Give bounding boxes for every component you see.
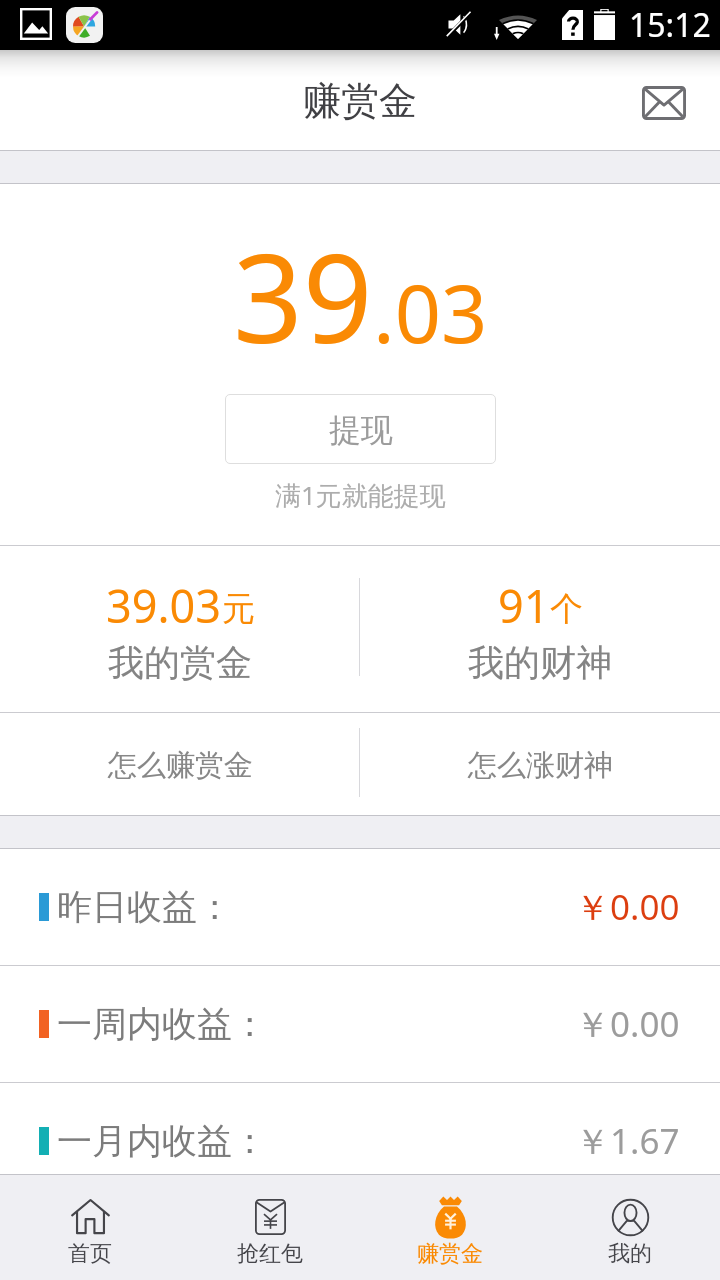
button[interactable]: 怎么涨财神 xyxy=(360,713,720,815)
button[interactable]: Messages xyxy=(628,67,700,139)
staticText: 一月内收益： xyxy=(57,1119,267,1163)
button[interactable]: 赚赏金 xyxy=(360,1175,540,1280)
staticText: 91 xyxy=(498,575,550,636)
button[interactable]: 91 xyxy=(360,546,720,712)
staticText: ￥1.67 xyxy=(575,1117,680,1165)
staticText: 我的财神 xyxy=(468,640,612,685)
button[interactable]: 提现 xyxy=(225,394,496,464)
button[interactable]: 昨日收益： xyxy=(0,849,720,965)
staticText: 怎么赚赏金 xyxy=(108,747,253,784)
button[interactable]: 39.03 xyxy=(0,546,360,712)
staticText: ￥0.00 xyxy=(575,883,680,931)
staticText: 39.03 xyxy=(106,575,222,636)
staticText: 个 xyxy=(550,588,583,630)
staticText: 我的赏金 xyxy=(108,640,252,685)
staticText: 提现 xyxy=(329,410,393,450)
staticText: .03 xyxy=(373,256,488,366)
staticText: 15:12 xyxy=(629,3,711,47)
staticText: 首页 xyxy=(68,1240,112,1268)
staticText: 39 xyxy=(233,213,373,379)
button[interactable]: 抢红包 xyxy=(180,1175,360,1280)
staticText: 赚赏金 xyxy=(303,77,417,125)
staticText: 赚赏金 xyxy=(417,1240,483,1268)
staticText: 怎么涨财神 xyxy=(468,747,613,784)
staticText: 满1元就能提现 xyxy=(275,477,446,513)
button[interactable]: 一周内收益： xyxy=(0,966,720,1082)
staticText: 元 xyxy=(222,588,255,630)
button[interactable]: 我的 xyxy=(540,1175,720,1280)
button[interactable]: 首页 xyxy=(0,1175,180,1280)
button[interactable]: 一月内收益： xyxy=(0,1083,720,1199)
staticText: ￥0.00 xyxy=(575,1000,680,1048)
staticText: 一周内收益： xyxy=(57,1002,267,1046)
staticText: 昨日收益： xyxy=(57,885,232,929)
staticText: 我的 xyxy=(608,1240,652,1268)
button[interactable]: 怎么赚赏金 xyxy=(0,713,360,815)
staticText: 抢红包 xyxy=(237,1240,303,1268)
